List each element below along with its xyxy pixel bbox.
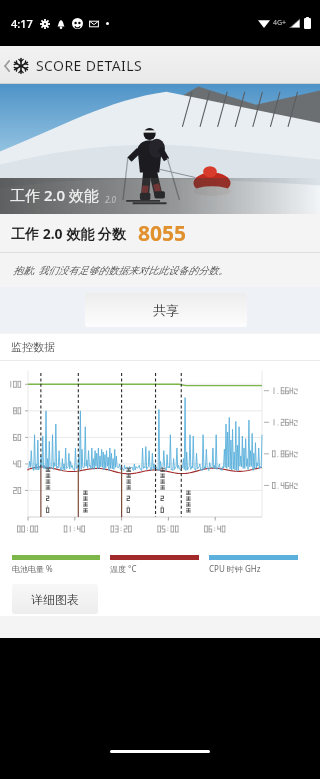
staticText: 监控数据: [11, 340, 55, 354]
staticText: 电池电量 %: [12, 563, 53, 574]
staticText: CPU 时钟 GHz: [209, 563, 261, 574]
button[interactable]: 共享: [85, 293, 247, 327]
staticText: 4:17: [11, 16, 33, 31]
button[interactable]: Home: [110, 750, 210, 753]
staticText: 共享: [153, 302, 179, 318]
button[interactable]: Back: [0, 56, 153, 75]
staticText: 抱歉, 我们没有足够的数据来对比此设备的分数。: [13, 263, 229, 277]
staticText: 2.0: [105, 194, 116, 205]
staticText: 工作 2.0 效能: [10, 185, 100, 205]
staticText: 4G+: [273, 18, 287, 28]
staticText: 工作 2.0 效能 分数: [11, 224, 126, 243]
staticText: 详细图表: [31, 592, 79, 607]
staticText: SCORE DETAILS: [36, 56, 143, 75]
staticText: 温度 °C: [110, 563, 137, 574]
staticText: 8055: [138, 219, 187, 248]
button[interactable]: 详细图表: [12, 584, 98, 614]
